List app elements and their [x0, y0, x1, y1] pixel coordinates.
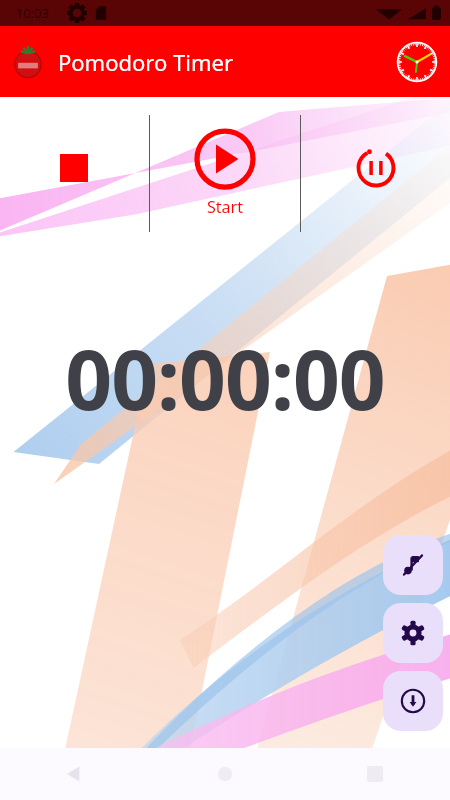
staticText: 00:00:00 [0, 322, 450, 434]
button[interactable]: Stop [44, 138, 104, 198]
button[interactable]: App logo [8, 42, 48, 82]
staticText: 10:03 [16, 4, 50, 22]
button[interactable]: Settings [383, 603, 443, 663]
button[interactable]: Pause [346, 138, 406, 198]
button[interactable]: Download [383, 671, 443, 731]
button[interactable]: Stopwatch [395, 40, 439, 84]
staticText: Start [185, 196, 265, 218]
button[interactable]: Start [185, 124, 265, 218]
staticText: Pomodoro Timer [58, 47, 233, 77]
button[interactable]: Mute music [383, 535, 443, 595]
